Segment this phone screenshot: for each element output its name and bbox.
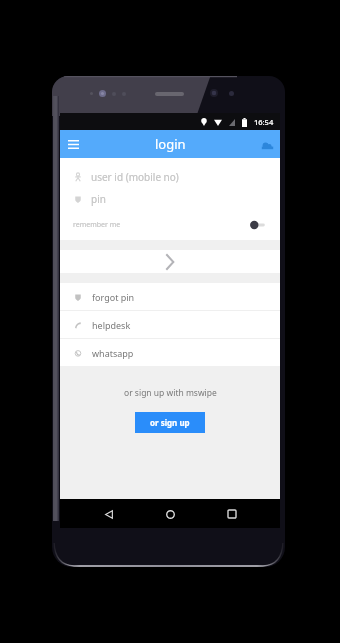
staticText: or sign up with mswipe [124,387,217,399]
button[interactable]: Recents [219,501,245,527]
button[interactable]: Remember me toggle [249,219,271,231]
button[interactable]: Menu [60,131,86,158]
button[interactable]: user id (mobile no) [75,166,280,188]
button[interactable]: pin [75,188,280,210]
button[interactable]: Submit [60,250,280,273]
staticText: helpdesk [92,319,131,331]
staticText: user id (mobile no) [91,170,179,184]
button[interactable]: or sign up [135,412,205,433]
button[interactable]: Home [157,501,183,527]
button[interactable]: Cloud [254,131,280,158]
staticText: pin [91,192,106,206]
staticText: login [155,135,186,153]
button[interactable]: helpdesk [75,311,280,338]
staticText: whatsapp [92,347,134,359]
button[interactable]: forgot pin [75,283,280,310]
button[interactable]: Back [96,501,122,527]
staticText: or sign up [150,417,190,428]
button[interactable]: whatsapp [75,339,280,366]
staticText: 16:54 [254,117,274,127]
staticText: remember me [73,220,121,230]
staticText: forgot pin [92,291,135,303]
